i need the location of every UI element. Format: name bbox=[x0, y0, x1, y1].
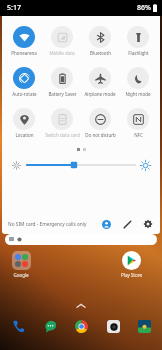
button[interactable]: Switch data card bbox=[43, 107, 81, 139]
button[interactable]: NFC bbox=[119, 107, 157, 139]
staticText: Phonearena bbox=[11, 50, 37, 56]
staticText: 86% bbox=[137, 3, 151, 13]
staticText: Play Store bbox=[121, 272, 142, 278]
button[interactable] bbox=[27, 158, 135, 172]
staticText: Mobile data bbox=[49, 50, 75, 56]
button[interactable]: Auto-rotate bbox=[5, 66, 43, 98]
staticText: Google bbox=[13, 272, 29, 278]
staticText: Airplane mode bbox=[84, 91, 116, 97]
button[interactable]: Settings bbox=[142, 218, 154, 230]
button[interactable]: Google bbox=[6, 251, 36, 278]
staticText: Flashlight bbox=[128, 50, 149, 56]
staticText: Bluetooth bbox=[90, 50, 111, 56]
button[interactable]: User bbox=[100, 218, 112, 230]
button[interactable]: Phonearena bbox=[5, 25, 43, 57]
button[interactable]: Search bbox=[5, 234, 157, 245]
staticText: Auto-rotate bbox=[12, 91, 37, 97]
button[interactable]: Chrome bbox=[71, 316, 91, 336]
button[interactable]: Camera bbox=[103, 316, 123, 336]
button[interactable]: Increase brightness bbox=[139, 159, 152, 172]
staticText: Battery Saver bbox=[48, 91, 77, 97]
button[interactable]: Decrease brightness bbox=[10, 159, 23, 172]
staticText: No SIM card - Emergency calls only bbox=[8, 221, 87, 228]
staticText: Location bbox=[15, 132, 34, 138]
button[interactable]: Flashlight bbox=[119, 25, 157, 57]
button[interactable]: Do not disturb bbox=[81, 107, 119, 139]
button[interactable]: Location bbox=[5, 107, 43, 139]
staticText: Do not disturb bbox=[85, 132, 116, 138]
button[interactable]: Messages bbox=[40, 316, 60, 336]
button[interactable]: Airplane mode bbox=[81, 66, 119, 98]
staticText: 5:17 bbox=[7, 3, 21, 13]
button[interactable]: Battery Saver bbox=[43, 66, 81, 98]
staticText: Night mode bbox=[125, 91, 151, 97]
staticText: Switch data card bbox=[45, 132, 80, 138]
button[interactable]: Edit bbox=[121, 218, 133, 230]
button[interactable]: Gallery bbox=[134, 316, 154, 336]
button[interactable]: Bluetooth bbox=[81, 25, 119, 57]
button[interactable]: Night mode bbox=[119, 66, 157, 98]
staticText: NFC bbox=[134, 132, 143, 138]
button[interactable]: Phone bbox=[8, 316, 28, 336]
button[interactable]: Mobile data bbox=[43, 25, 81, 57]
button[interactable]: Play Store bbox=[116, 251, 146, 278]
